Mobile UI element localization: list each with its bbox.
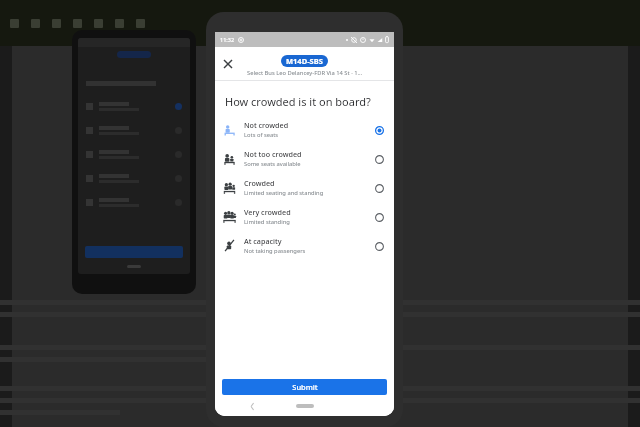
button[interactable]: Crowded — [215, 173, 394, 202]
staticText: Not too crowded — [244, 149, 302, 159]
staticText: Very crowded — [244, 207, 291, 217]
staticText: Crowded — [244, 178, 275, 188]
button[interactable]: M14D-SBS — [286, 56, 323, 66]
button[interactable]: Not too crowded — [215, 144, 394, 173]
staticText: Select Bus Leo Delancey-FDR Via 14 St · … — [247, 69, 363, 77]
staticText: 11:32 — [220, 36, 235, 43]
button[interactable]: At capacity — [215, 231, 394, 260]
staticText: Lots of seats — [244, 131, 279, 139]
button[interactable]: Home — [296, 404, 314, 408]
staticText: Not taking passengers — [244, 247, 306, 255]
staticText: Limited seating and standing — [244, 189, 324, 197]
button[interactable]: Very crowded — [215, 202, 394, 231]
staticText: Not crowded — [244, 120, 289, 130]
button[interactable]: Close — [220, 56, 236, 72]
staticText: At capacity — [244, 236, 282, 246]
staticText: Some seats available — [244, 160, 301, 168]
staticText: Limited standing — [244, 218, 290, 226]
button[interactable]: Not crowded — [215, 115, 394, 144]
staticText: How crowded is it on board? — [225, 94, 371, 109]
staticText: Submit — [292, 382, 318, 392]
button[interactable]: Submit — [222, 379, 387, 395]
button[interactable]: Back — [245, 399, 259, 413]
staticText: M14D-SBS — [286, 56, 323, 66]
